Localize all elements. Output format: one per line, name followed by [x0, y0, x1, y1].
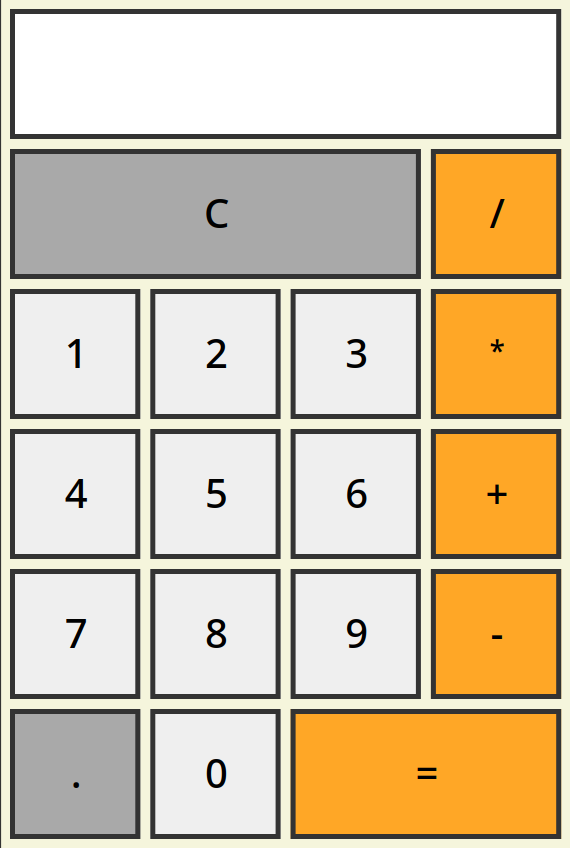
staticText: 8: [205, 606, 228, 659]
button[interactable]: Add: [431, 429, 561, 559]
button[interactable]: Equals: [291, 709, 561, 839]
button[interactable]: 2: [150, 289, 281, 419]
staticText: .: [71, 746, 82, 799]
staticText: 6: [345, 466, 368, 519]
staticText: 7: [65, 606, 88, 659]
button[interactable]: Subtract: [431, 569, 561, 699]
button[interactable]: Divide: [431, 149, 561, 279]
staticText: 3: [345, 326, 368, 379]
button[interactable]: 8: [150, 569, 281, 699]
button[interactable]: 1: [10, 289, 140, 419]
staticText: /: [490, 186, 505, 239]
button[interactable]: 3: [291, 289, 421, 419]
button[interactable]: 0: [150, 709, 281, 839]
button[interactable]: 6: [291, 429, 421, 559]
staticText: =: [415, 746, 438, 799]
staticText: 9: [345, 606, 368, 659]
staticText: 0: [205, 746, 228, 799]
staticText: 5: [205, 466, 228, 519]
button[interactable]: 4: [10, 429, 140, 559]
button[interactable]: 7: [10, 569, 140, 699]
staticText: C: [204, 186, 229, 239]
button[interactable]: Decimal point: [10, 709, 140, 839]
button[interactable]: Clear: [10, 149, 421, 279]
staticText: *: [490, 332, 505, 369]
button[interactable]: 9: [291, 569, 421, 699]
staticText: 4: [65, 466, 88, 519]
staticText: 1: [65, 326, 88, 379]
staticText: -: [491, 606, 504, 659]
button[interactable]: Multiply: [431, 289, 561, 419]
button[interactable]: 5: [150, 429, 281, 559]
staticText: +: [486, 466, 509, 519]
staticText: 2: [205, 326, 228, 379]
